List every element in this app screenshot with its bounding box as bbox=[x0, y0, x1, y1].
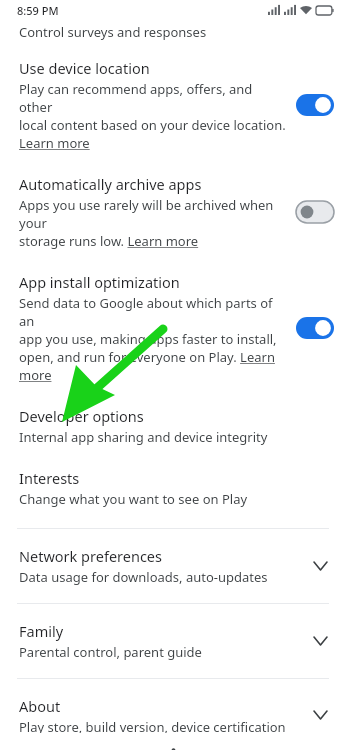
staticText: app you use, making apps faster to insta… bbox=[19, 330, 277, 348]
staticText: 8:59 PM bbox=[17, 3, 59, 18]
button[interactable]: On bbox=[296, 317, 334, 339]
button[interactable]: Family bbox=[0, 604, 346, 678]
staticText: Data usage for downloads, auto-updates bbox=[19, 568, 268, 586]
staticText: Parental control, parent guide bbox=[19, 643, 202, 661]
staticText: Network preferences bbox=[19, 546, 162, 566]
staticText: Automatically archive apps bbox=[19, 174, 202, 194]
staticText: storage runs low. Learn more bbox=[19, 232, 199, 250]
staticText: Play store, build version, device certif… bbox=[19, 718, 286, 733]
button[interactable]: Use device location bbox=[0, 58, 346, 152]
staticText: Developer options bbox=[19, 406, 144, 426]
staticText: About bbox=[19, 696, 61, 716]
button[interactable]: Off bbox=[296, 201, 334, 223]
button[interactable]: Control surveys and responses bbox=[0, 20, 346, 42]
button[interactable]: On bbox=[296, 94, 334, 116]
button[interactable]: Interests bbox=[0, 468, 346, 508]
staticText: Learn more bbox=[19, 134, 90, 152]
staticText: Family bbox=[19, 621, 64, 641]
staticText: local content based on your device locat… bbox=[19, 116, 286, 134]
other: Expand Network preferences bbox=[308, 554, 332, 578]
button[interactable]: Automatically archive apps bbox=[0, 174, 346, 250]
other: Expand About bbox=[308, 703, 332, 727]
button[interactable]: About bbox=[0, 679, 346, 750]
staticText: Control surveys and responses bbox=[19, 23, 207, 41]
staticText: App install optimization bbox=[19, 272, 180, 292]
staticText: Internal app sharing and device integrit… bbox=[19, 428, 268, 446]
staticText: Use device location bbox=[19, 58, 150, 78]
staticText: Send data to Google about which parts of… bbox=[19, 294, 288, 330]
staticText: Interests bbox=[19, 468, 80, 488]
staticText: Apps you use rarely will be archived whe… bbox=[19, 196, 288, 232]
staticText: Play can recommend apps, offers, and oth… bbox=[19, 80, 288, 116]
button[interactable]: App install optimization bbox=[0, 272, 346, 384]
staticText: more bbox=[19, 366, 52, 384]
button[interactable]: Developer options bbox=[0, 406, 346, 446]
staticText: open, and run for everyone on Play. Lear… bbox=[19, 348, 275, 366]
other: Expand Family bbox=[308, 629, 332, 653]
staticText: Change what you want to see on Play bbox=[19, 490, 248, 508]
button[interactable]: Network preferences bbox=[0, 529, 346, 603]
